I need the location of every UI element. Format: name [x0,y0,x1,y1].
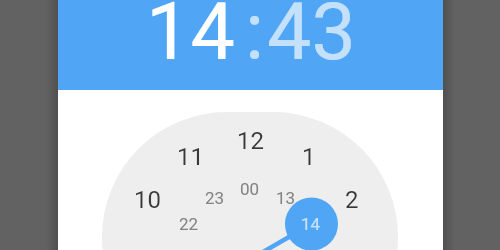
staticText: 11 [177,143,204,171]
button[interactable]: 00 [220,169,280,209]
staticText: 14 [301,214,321,234]
button[interactable]: 22 [159,204,219,244]
button[interactable]: 13 [256,178,316,218]
staticText: 00 [240,179,260,199]
button[interactable]: 10 [117,180,177,220]
button[interactable]: 23 [185,178,245,218]
staticText: 13 [276,188,296,208]
staticText: : [245,0,265,76]
button[interactable]: 14 [146,0,235,76]
staticText: 12 [237,127,264,155]
button[interactable]: 43 [267,0,356,76]
button[interactable]: 1 [279,137,339,177]
button[interactable]: 14 [281,204,341,244]
staticText: 2 [345,186,359,214]
button[interactable]: 11 [160,137,220,177]
staticText: 1 [302,143,316,171]
staticText: 10 [134,186,161,214]
staticText: 22 [179,214,199,234]
staticText: 23 [205,188,225,208]
button[interactable]: 2 [322,180,382,220]
button[interactable]: 12 [220,121,280,161]
